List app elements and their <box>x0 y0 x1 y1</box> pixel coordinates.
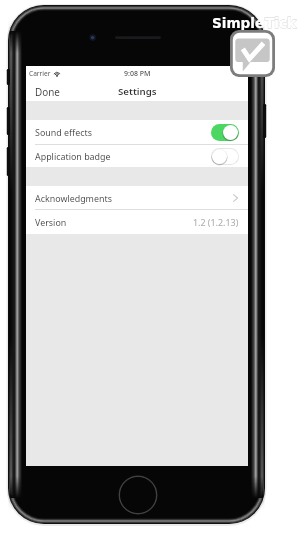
button[interactable]: Done <box>26 81 88 101</box>
staticText: Settings <box>118 85 157 98</box>
staticText: Version <box>35 216 67 228</box>
button[interactable]: Application badge <box>26 145 248 167</box>
button[interactable]: Version <box>26 210 248 234</box>
staticText: Done <box>35 85 60 98</box>
button[interactable]: Switch on <box>211 124 239 141</box>
button[interactable]: Switch off <box>211 148 239 165</box>
button[interactable]: Acknowledgments <box>26 186 248 209</box>
button[interactable]: SimpleTick app icon <box>230 30 275 77</box>
staticText: 1.2 (1.2.13) <box>193 216 239 228</box>
staticText: Sound effects <box>35 126 92 138</box>
button[interactable]: Sound effects <box>26 120 248 144</box>
staticText: Tick <box>265 15 297 31</box>
staticText: 9:08 PM <box>124 69 151 79</box>
staticText: Acknowledgments <box>35 192 112 204</box>
staticText: Application badge <box>35 150 111 162</box>
staticText: Tick <box>265 15 297 31</box>
staticText: Carrier <box>29 69 51 78</box>
staticText: Simple <box>212 15 265 31</box>
